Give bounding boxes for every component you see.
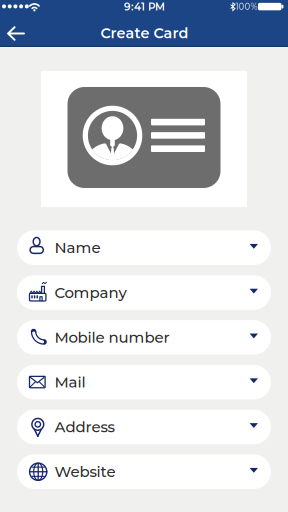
staticText: Mail xyxy=(54,373,85,391)
staticText: Address xyxy=(54,418,114,436)
staticText: Create Card xyxy=(100,24,188,42)
staticText: Website xyxy=(54,463,115,481)
button[interactable]: Company xyxy=(17,275,271,310)
button[interactable]: Mail xyxy=(17,365,271,399)
staticText: 9:41 PM xyxy=(124,0,165,13)
staticText: 100% xyxy=(235,2,257,12)
staticText: Name xyxy=(54,239,100,257)
button[interactable]: Mobile number xyxy=(17,320,271,355)
button[interactable]: Address xyxy=(17,410,271,444)
button[interactable]: Name xyxy=(17,230,271,265)
button[interactable]: Website xyxy=(17,454,271,489)
staticText: Mobile number xyxy=(54,328,169,346)
staticText: Company xyxy=(54,283,126,302)
button[interactable] xyxy=(6,23,28,44)
